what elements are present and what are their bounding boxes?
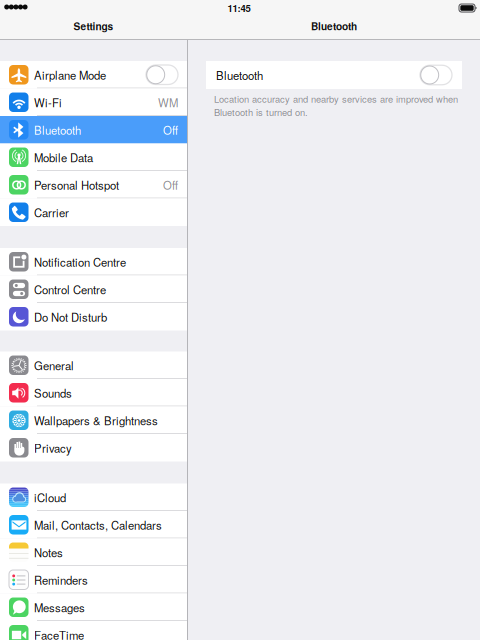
staticText: FaceTime xyxy=(34,627,84,640)
button[interactable]: Privacy xyxy=(0,434,187,461)
staticText: Mobile Data xyxy=(34,149,93,165)
staticText: Notification Centre xyxy=(34,254,126,270)
button[interactable]: Airplane Mode xyxy=(0,61,187,88)
button[interactable]: Mobile Data xyxy=(0,143,187,171)
button[interactable]: iCloud xyxy=(0,483,187,511)
button[interactable]: Personal Hotspot xyxy=(0,171,187,198)
staticText: WM xyxy=(158,94,178,110)
staticText: Wallpapers & Brightness xyxy=(34,412,158,428)
staticText: Messages xyxy=(34,599,85,615)
button[interactable]: Control Centre xyxy=(0,275,187,303)
button[interactable]: General xyxy=(0,351,187,379)
button[interactable]: Bluetooth xyxy=(0,116,187,143)
staticText: Notes xyxy=(34,544,63,560)
staticText: Bluetooth xyxy=(216,67,263,83)
staticText: Wi-Fi xyxy=(34,94,62,110)
button[interactable]: Wallpapers & Brightness xyxy=(0,406,187,434)
staticText: Personal Hotspot xyxy=(34,177,119,193)
staticText: Sounds xyxy=(34,385,72,401)
button[interactable]: Do Not Disturb xyxy=(0,303,187,330)
staticText: Carrier xyxy=(34,204,69,220)
staticText: Mail, Contacts, Calendars xyxy=(34,517,162,533)
button[interactable]: Messages xyxy=(0,593,187,621)
staticText: Do Not Disturb xyxy=(34,309,107,325)
button[interactable]: Sounds xyxy=(0,379,187,406)
staticText: Settings xyxy=(73,19,113,33)
button[interactable]: Notification Centre xyxy=(0,248,187,275)
button[interactable]: Notes xyxy=(0,538,187,566)
button[interactable]: Reminders xyxy=(0,566,187,593)
staticText: Off xyxy=(163,122,178,138)
staticText: Reminders xyxy=(34,572,88,588)
staticText: General xyxy=(34,357,74,373)
staticText: Off xyxy=(163,177,178,193)
staticText: 11:45 xyxy=(227,1,250,15)
staticText: Privacy xyxy=(34,440,72,456)
staticText: iCloud xyxy=(34,489,66,505)
button[interactable]: Bluetooth xyxy=(206,61,462,89)
staticText: Location accuracy and nearby services ar… xyxy=(214,92,458,119)
staticText: Airplane Mode xyxy=(34,67,106,83)
staticText: Control Centre xyxy=(34,281,106,297)
button[interactable]: Carrier xyxy=(0,198,187,226)
staticText: Bluetooth xyxy=(311,19,357,33)
button[interactable]: FaceTime xyxy=(0,621,187,640)
staticText: Bluetooth xyxy=(34,122,81,138)
button[interactable]: Wi-Fi xyxy=(0,88,187,116)
button[interactable]: Mail, Contacts, Calendars xyxy=(0,511,187,538)
